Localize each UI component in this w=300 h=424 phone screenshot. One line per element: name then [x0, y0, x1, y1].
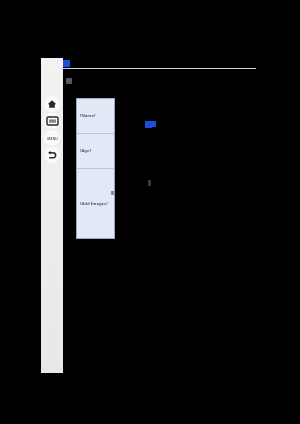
button[interactable]: [Name] [76, 98, 115, 133]
button[interactable]: Window [44, 113, 60, 129]
button[interactable]: [Add Images] [76, 169, 115, 239]
button[interactable]: [Age] [76, 134, 115, 168]
button[interactable]: Home [44, 96, 60, 112]
button[interactable]: Menu [44, 130, 60, 146]
staticText: [Add Images] [80, 201, 108, 207]
button[interactable]: Back [44, 147, 60, 163]
staticText: [Age] [80, 148, 91, 154]
staticText: MENU [47, 136, 58, 141]
staticText: [Name] [80, 113, 96, 119]
